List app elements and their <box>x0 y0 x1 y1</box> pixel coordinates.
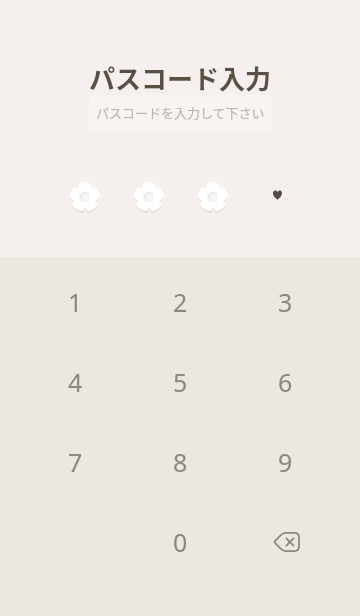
staticText: 1 <box>68 285 83 319</box>
button[interactable]: 0 <box>128 502 233 582</box>
staticText: 0 <box>173 525 188 559</box>
staticText: パスコードを入力して下さい <box>96 103 265 122</box>
staticText: 9 <box>278 445 293 479</box>
button[interactable]: 2 <box>128 262 233 342</box>
button[interactable]: 1 <box>22 262 128 342</box>
button[interactable]: 7 <box>22 422 128 502</box>
button[interactable]: 9 <box>233 422 338 502</box>
button[interactable]: 8 <box>128 422 233 502</box>
button[interactable]: 3 <box>233 262 338 342</box>
staticText: 6 <box>278 365 293 399</box>
staticText: 5 <box>173 365 188 399</box>
staticText: パスコード入力 <box>89 59 272 97</box>
button[interactable]: 6 <box>233 342 338 422</box>
button[interactable]: 4 <box>22 342 128 422</box>
other: Backspace <box>269 525 303 559</box>
staticText: 3 <box>278 285 293 319</box>
staticText: 4 <box>68 365 83 399</box>
button[interactable]: Backspace <box>233 502 338 582</box>
staticText: 8 <box>173 445 188 479</box>
staticText: 2 <box>173 285 188 319</box>
button[interactable]: 5 <box>128 342 233 422</box>
staticText: 7 <box>68 445 83 479</box>
